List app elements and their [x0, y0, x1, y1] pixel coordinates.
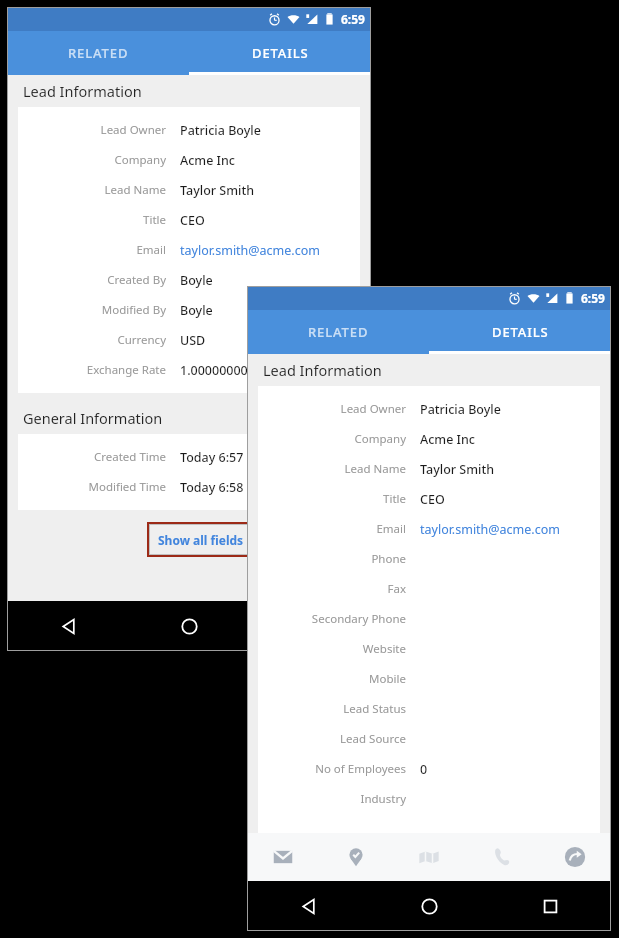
button[interactable]: Check in	[319, 833, 392, 881]
button[interactable]: Industry	[258, 784, 600, 814]
button[interactable]: Mobile	[258, 664, 600, 694]
button[interactable]: Exchange Rate	[18, 355, 360, 385]
staticText: Secondary Phone	[311, 611, 406, 627]
staticText: Show all fields	[158, 532, 244, 548]
staticText: Mobile	[369, 671, 406, 687]
staticText: CEO	[420, 491, 445, 508]
staticText: Acme Inc	[420, 431, 475, 448]
staticText: RELATED	[68, 44, 129, 62]
staticText: 0	[420, 761, 428, 778]
button[interactable]: Recents	[490, 881, 611, 931]
staticText: taylor.smith@acme.com	[420, 521, 560, 538]
staticText: Created By	[107, 272, 166, 288]
button[interactable]: Secondary Phone	[258, 604, 600, 634]
staticText: Lead Information	[23, 81, 142, 101]
button[interactable]: RELATED	[247, 310, 429, 354]
staticText: Currency	[117, 332, 166, 348]
button[interactable]: Lead Name	[258, 454, 600, 484]
staticText: General Information	[23, 408, 163, 428]
button[interactable]: Email	[18, 235, 360, 265]
staticText: DETAILS	[252, 44, 309, 62]
button[interactable]: Email	[258, 514, 600, 544]
staticText: taylor.smith@acme.com	[180, 242, 320, 259]
button[interactable]: Company	[18, 145, 360, 175]
button[interactable]: Home	[129, 601, 250, 651]
staticText: Phone	[371, 551, 406, 567]
staticText: Modified By	[101, 302, 166, 318]
button[interactable]: Lead Source	[258, 724, 600, 754]
button[interactable]: Currency	[18, 325, 360, 355]
staticText: Title	[383, 491, 406, 507]
button[interactable]: Map	[392, 833, 465, 881]
button[interactable]: Fax	[258, 574, 600, 604]
button[interactable]: Call	[465, 833, 538, 881]
staticText: Exchange Rate	[86, 362, 166, 378]
button[interactable]: Created By	[18, 265, 360, 295]
button[interactable]: Show all fields	[149, 524, 252, 555]
staticText: Acme Inc	[180, 152, 235, 169]
button[interactable]: RELATED	[7, 31, 189, 75]
button[interactable]: Website	[258, 634, 600, 664]
staticText: Today 6:57 pm	[180, 449, 267, 466]
button[interactable]: Lead Status	[258, 694, 600, 724]
button[interactable]: Lead Owner	[258, 394, 600, 424]
button[interactable]: Company	[258, 424, 600, 454]
button[interactable]: Home	[369, 881, 490, 931]
button[interactable]: Phone	[258, 544, 600, 574]
staticText: Lead Information	[263, 360, 382, 380]
staticText: Company	[354, 431, 406, 447]
staticText: Website	[362, 641, 406, 657]
staticText: Fax	[387, 581, 406, 597]
staticText: Boyle	[180, 302, 213, 319]
staticText: No of Employees	[315, 761, 406, 777]
button[interactable]: Title	[258, 484, 600, 514]
button[interactable]: Share	[538, 833, 611, 881]
staticText: CEO	[180, 212, 205, 229]
staticText: Lead Owner	[100, 122, 166, 138]
staticText: Lead Source	[340, 731, 406, 747]
staticText: Today 6:58 pm	[180, 479, 267, 496]
staticText: USD	[180, 332, 206, 349]
button[interactable]: DETAILS	[189, 31, 371, 75]
staticText: Lead Name	[104, 182, 166, 198]
staticText: 6:59	[341, 11, 365, 27]
button[interactable]: Email	[247, 833, 319, 881]
staticText: Lead Name	[344, 461, 406, 477]
button[interactable]: Back	[7, 601, 129, 651]
button[interactable]: No of Employees	[258, 754, 600, 784]
staticText: 6:59	[581, 290, 605, 306]
staticText: Title	[143, 212, 166, 228]
button[interactable]: Created Time	[18, 442, 360, 472]
staticText: 1.000000000	[180, 362, 255, 379]
staticText: Patricia Boyle	[180, 122, 261, 139]
staticText: Modified Time	[88, 479, 166, 495]
staticText: Email	[136, 242, 166, 258]
button[interactable]: Modified Time	[18, 472, 360, 502]
button[interactable]: Lead Owner	[18, 115, 360, 145]
staticText: Patricia Boyle	[420, 401, 501, 418]
staticText: Boyle	[180, 272, 213, 289]
staticText: Lead Status	[343, 701, 406, 717]
button[interactable]: Back	[247, 881, 369, 931]
button[interactable]: Modified By	[18, 295, 360, 325]
staticText: Company	[114, 152, 166, 168]
staticText: Industry	[360, 791, 406, 807]
button[interactable]: Title	[18, 205, 360, 235]
staticText: Taylor Smith	[180, 182, 255, 199]
staticText: DETAILS	[492, 323, 549, 341]
staticText: Lead Owner	[340, 401, 406, 417]
staticText: Created Time	[93, 449, 166, 465]
button[interactable]: Recents	[250, 601, 371, 651]
button[interactable]: Lead Name	[18, 175, 360, 205]
staticText: Taylor Smith	[420, 461, 495, 478]
staticText: RELATED	[308, 323, 369, 341]
button[interactable]: DETAILS	[429, 310, 611, 354]
staticText: Email	[376, 521, 406, 537]
